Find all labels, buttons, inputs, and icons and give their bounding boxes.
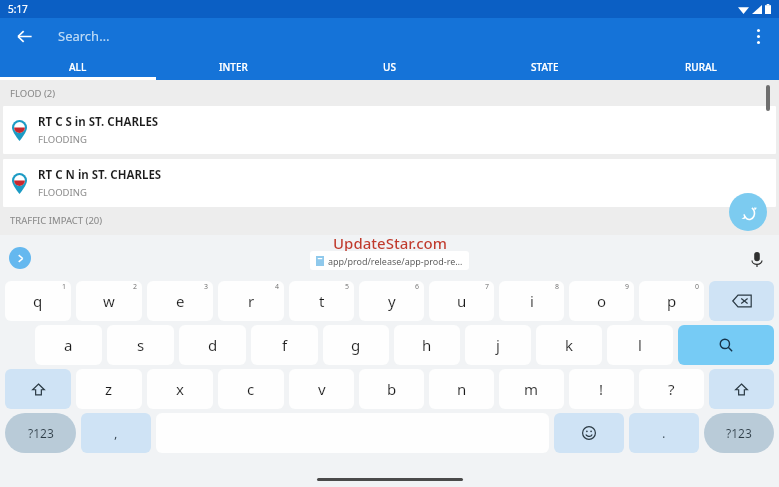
- button[interactable]: v: [289, 369, 354, 409]
- staticText: e: [176, 291, 185, 311]
- staticText: 1: [62, 282, 67, 292]
- button[interactable]: ?123: [5, 413, 76, 453]
- button[interactable]: US: [311, 54, 467, 80]
- staticText: 5: [345, 282, 350, 292]
- button[interactable]: ?123: [704, 413, 774, 453]
- button[interactable]: More options: [743, 21, 773, 51]
- button[interactable]: h: [394, 325, 460, 365]
- staticText: w: [103, 291, 115, 311]
- button[interactable]: Refresh: [729, 193, 767, 231]
- button[interactable]: Expand suggestions: [9, 247, 31, 269]
- button[interactable]: a: [35, 325, 102, 365]
- staticText: u: [457, 291, 467, 311]
- button[interactable]: INTER: [155, 54, 311, 80]
- staticText: ?123: [28, 425, 54, 441]
- button[interactable]: g: [323, 325, 389, 365]
- button[interactable]: Backspace: [709, 281, 774, 321]
- staticText: h: [422, 335, 432, 355]
- button[interactable]: x: [147, 369, 213, 409]
- button[interactable]: o: [569, 281, 634, 321]
- button[interactable]: j: [465, 325, 531, 365]
- staticText: FLOOD (2): [10, 87, 56, 100]
- staticText: 5:17: [8, 2, 28, 16]
- staticText: v: [318, 379, 326, 399]
- button[interactable]: ALL: [0, 54, 155, 80]
- button[interactable]: Shift: [5, 369, 71, 409]
- button[interactable]: s: [107, 325, 174, 365]
- button[interactable]: b: [359, 369, 424, 409]
- button[interactable]: ?: [639, 369, 704, 409]
- staticText: b: [387, 379, 397, 399]
- staticText: 0: [695, 282, 700, 292]
- button[interactable]: m: [499, 369, 564, 409]
- staticText: 2: [133, 282, 138, 292]
- staticText: !: [599, 379, 604, 399]
- button[interactable]: y: [359, 281, 424, 321]
- staticText: ,: [114, 424, 118, 442]
- staticText: m: [524, 379, 539, 399]
- button[interactable]: w: [76, 281, 142, 321]
- staticText: FLOODING: [38, 186, 87, 199]
- staticText: x: [176, 379, 184, 399]
- staticText: q: [33, 291, 43, 311]
- button[interactable]: STATE: [467, 54, 623, 80]
- button[interactable]: p: [639, 281, 704, 321]
- staticText: g: [351, 335, 361, 355]
- staticText: p: [667, 291, 677, 311]
- staticText: 7: [485, 282, 490, 292]
- button[interactable]: RT C N in ST. CHARLES: [3, 159, 776, 207]
- staticText: f: [282, 335, 288, 355]
- staticText: RT C S in ST. CHARLES: [38, 114, 159, 130]
- staticText: INTER: [219, 60, 248, 74]
- staticText: r: [248, 291, 255, 311]
- staticText: l: [638, 335, 642, 355]
- staticText: y: [388, 291, 396, 311]
- staticText: Search…: [58, 27, 110, 45]
- button[interactable]: RT C S in ST. CHARLES: [3, 106, 776, 154]
- staticText: ALL: [69, 60, 87, 74]
- staticText: US: [383, 60, 396, 74]
- button[interactable]: ,: [81, 413, 151, 453]
- button[interactable]: u: [429, 281, 494, 321]
- button[interactable]: i: [499, 281, 564, 321]
- button[interactable]: !: [569, 369, 634, 409]
- button[interactable]: n: [429, 369, 494, 409]
- staticText: s: [137, 335, 145, 355]
- staticText: TRAFFIC IMPACT (20): [10, 214, 103, 227]
- staticText: RT C N in ST. CHARLES: [38, 167, 162, 183]
- button[interactable]: k: [536, 325, 602, 365]
- staticText: app/prod/release/app-prod-re…: [328, 255, 463, 267]
- staticText: o: [597, 291, 607, 311]
- staticText: UpdateStar.com: [333, 233, 447, 253]
- staticText: 4: [275, 282, 280, 292]
- button[interactable]: f: [251, 325, 318, 365]
- staticText: n: [457, 379, 467, 399]
- button[interactable]: t: [289, 281, 354, 321]
- staticText: a: [64, 335, 73, 355]
- staticText: 3: [204, 282, 209, 292]
- button[interactable]: Back: [8, 20, 40, 52]
- staticText: ?123: [726, 425, 752, 441]
- button[interactable]: e: [147, 281, 213, 321]
- button[interactable]: Search: [678, 325, 774, 365]
- button[interactable]: Voice input: [745, 247, 769, 271]
- button[interactable]: z: [76, 369, 142, 409]
- button[interactable]: Emoji: [554, 413, 624, 453]
- staticText: 8: [555, 282, 560, 292]
- button[interactable]: RURAL: [623, 54, 779, 80]
- staticText: STATE: [531, 60, 559, 74]
- button[interactable]: r: [218, 281, 284, 321]
- button[interactable]: .: [629, 413, 699, 453]
- button[interactable]: Shift: [709, 369, 774, 409]
- staticText: i: [530, 291, 534, 311]
- button[interactable]: d: [179, 325, 246, 365]
- staticText: 6: [415, 282, 420, 292]
- button[interactable]: q: [5, 281, 71, 321]
- button[interactable]: c: [218, 369, 284, 409]
- button[interactable]: l: [607, 325, 673, 365]
- staticText: k: [565, 335, 574, 355]
- staticText: RURAL: [685, 60, 717, 74]
- button[interactable]: app/prod/release/app-prod-re…: [316, 251, 463, 270]
- staticText: z: [105, 379, 113, 399]
